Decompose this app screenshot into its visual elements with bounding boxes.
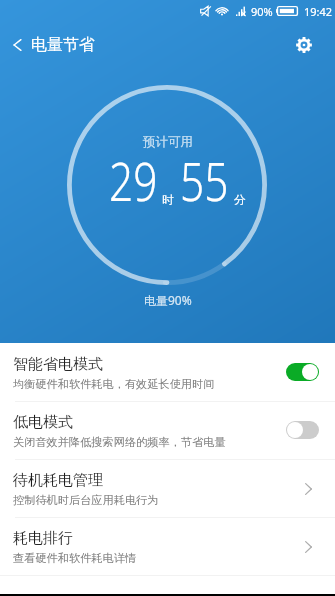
staticText: 查看硬件和软件耗电详情	[13, 551, 137, 565]
staticText: 均衡硬件和软件耗电，有效延长使用时间	[13, 377, 215, 391]
staticText: 预计可用	[143, 134, 193, 150]
button[interactable]: Back	[0, 28, 109, 62]
staticText: 时	[162, 193, 174, 207]
staticText: 分	[234, 193, 246, 207]
button[interactable]: 智能省电模式	[0, 343, 335, 401]
staticText: 90%	[251, 4, 273, 19]
staticText: 电量90%	[144, 292, 192, 308]
button[interactable]: Settings	[288, 29, 320, 61]
staticText: 低电模式	[13, 413, 73, 432]
staticText: 55	[180, 144, 229, 216]
button[interactable]: 待机耗电管理	[0, 459, 335, 517]
staticText: 电量节省	[31, 35, 95, 55]
staticText: 19:42	[304, 4, 333, 19]
staticText: 智能省电模式	[13, 355, 103, 374]
button[interactable]: 低电模式	[0, 401, 335, 459]
button[interactable]: On	[286, 363, 319, 381]
staticText: 29	[109, 144, 158, 216]
staticText: 待机耗电管理	[13, 471, 103, 490]
staticText: 关闭音效并降低搜索网络的频率，节省电量	[13, 435, 226, 449]
staticText: 耗电排行	[13, 529, 73, 548]
other: Back	[13, 38, 22, 52]
button[interactable]: 耗电排行	[0, 517, 335, 575]
staticText: 控制待机时后台应用耗电行为	[13, 493, 159, 507]
button[interactable]: Off	[286, 421, 319, 439]
